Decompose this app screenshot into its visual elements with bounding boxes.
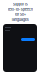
staticText: Supports text-to-speech for 50+ language… [7, 2, 32, 22]
